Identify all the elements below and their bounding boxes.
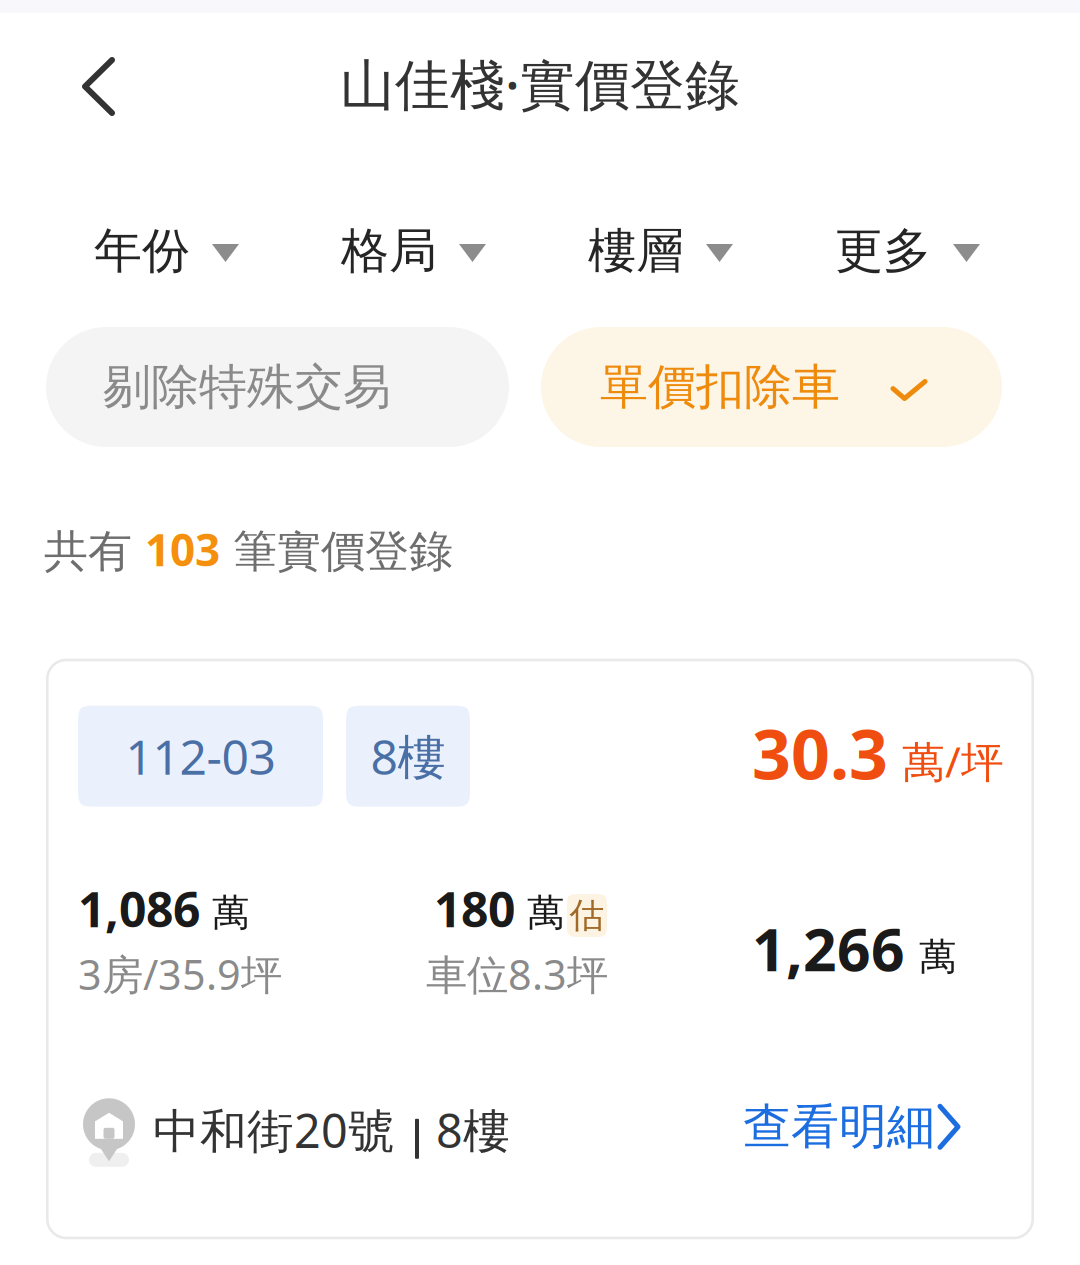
button[interactable]: Back [59, 34, 138, 139]
staticText: 8樓 [436, 1099, 510, 1161]
staticText: 共有 [44, 525, 145, 579]
staticText: 1,266 萬 [752, 910, 956, 988]
button[interactable]: 查看明細 [743, 1100, 1002, 1159]
staticText: 180 萬 [434, 877, 564, 940]
staticText: 103 [145, 520, 220, 578]
staticText: 筆實價登錄 [220, 525, 453, 579]
staticText: 樓層 [588, 221, 684, 280]
staticText: 單價扣除車 [600, 357, 840, 416]
staticText: 山佳棧·實價登錄 [340, 47, 740, 120]
staticText: 車位8.3坪 [426, 946, 608, 1001]
button[interactable]: 112-03 [46, 659, 1034, 1239]
staticText: 查看明細 [743, 1097, 935, 1156]
staticText: 估 [569, 894, 604, 937]
staticText: 年份 [94, 221, 190, 280]
button[interactable]: 剔除特殊交易 [46, 327, 509, 447]
button[interactable]: 單價扣除車 [541, 327, 1002, 447]
staticText: 中和街20號 [153, 1099, 395, 1161]
button[interactable]: 年份 [94, 221, 239, 280]
staticText: 8樓 [370, 724, 445, 788]
button[interactable]: 格局 [341, 221, 486, 280]
staticText: 30.3 萬/坪 [752, 708, 1004, 798]
button[interactable]: 更多 [835, 221, 980, 280]
staticText: 3房/35.9坪 [78, 946, 282, 1001]
staticText: 更多 [835, 221, 931, 280]
button[interactable]: 樓層 [588, 221, 733, 280]
staticText: 1,086 萬 [78, 877, 249, 940]
staticText: 112-03 [125, 724, 275, 788]
staticText: 剔除特殊交易 [103, 357, 391, 416]
staticText: 格局 [341, 221, 437, 280]
